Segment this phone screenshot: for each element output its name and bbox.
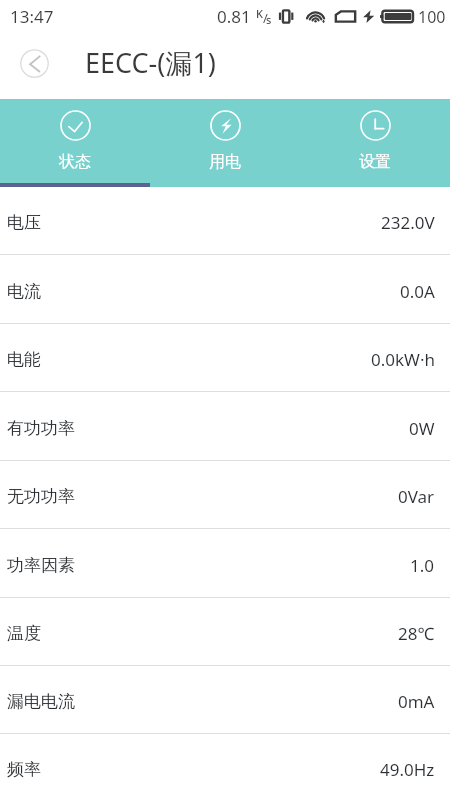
staticText: 状态	[59, 152, 91, 172]
staticText: 电流	[7, 281, 41, 302]
staticText: 电压	[7, 212, 41, 233]
staticText: 漏电电流	[7, 691, 75, 712]
button[interactable]: 频率	[0, 734, 450, 800]
button[interactable]: 温度	[0, 598, 450, 665]
staticText: 0W	[409, 417, 435, 440]
staticText: 13:47	[10, 5, 54, 28]
staticText: /	[263, 9, 268, 27]
button[interactable]: 用电	[150, 99, 300, 183]
staticText: 电能	[7, 349, 41, 370]
button[interactable]: 漏电电流	[0, 666, 450, 733]
staticText: 0.81	[217, 5, 251, 28]
staticText: 有功功率	[7, 418, 75, 439]
staticText: 0.0kW·h	[371, 348, 435, 371]
button[interactable]: 设置	[300, 99, 450, 183]
staticText: 用电	[209, 152, 241, 172]
staticText: 设置	[359, 152, 391, 172]
staticText: K	[256, 6, 263, 21]
button[interactable]: 有功功率	[0, 392, 450, 460]
staticText: s	[266, 12, 272, 27]
button[interactable]: 状态	[0, 99, 150, 183]
staticText: 无功功率	[7, 486, 75, 507]
staticText: EECC-(漏1)	[85, 44, 216, 81]
button[interactable]: Back	[11, 40, 57, 86]
button[interactable]: 功率因素	[0, 529, 450, 597]
staticText: 温度	[7, 623, 41, 644]
staticText: 频率	[7, 759, 41, 780]
button[interactable]: 电压	[0, 187, 450, 254]
staticText: 0mA	[398, 690, 435, 713]
staticText: 232.0V	[381, 211, 435, 234]
staticText: 0.0A	[400, 280, 435, 303]
button[interactable]: 电流	[0, 255, 450, 323]
staticText: 0Var	[398, 485, 435, 508]
staticText: 100	[418, 6, 446, 28]
staticText: 28℃	[398, 622, 435, 645]
button[interactable]: 电能	[0, 324, 450, 391]
staticText: 功率因素	[7, 555, 75, 576]
staticText: 1.0	[410, 554, 435, 577]
button[interactable]: 无功功率	[0, 461, 450, 528]
staticText: 49.0Hz	[380, 758, 435, 781]
